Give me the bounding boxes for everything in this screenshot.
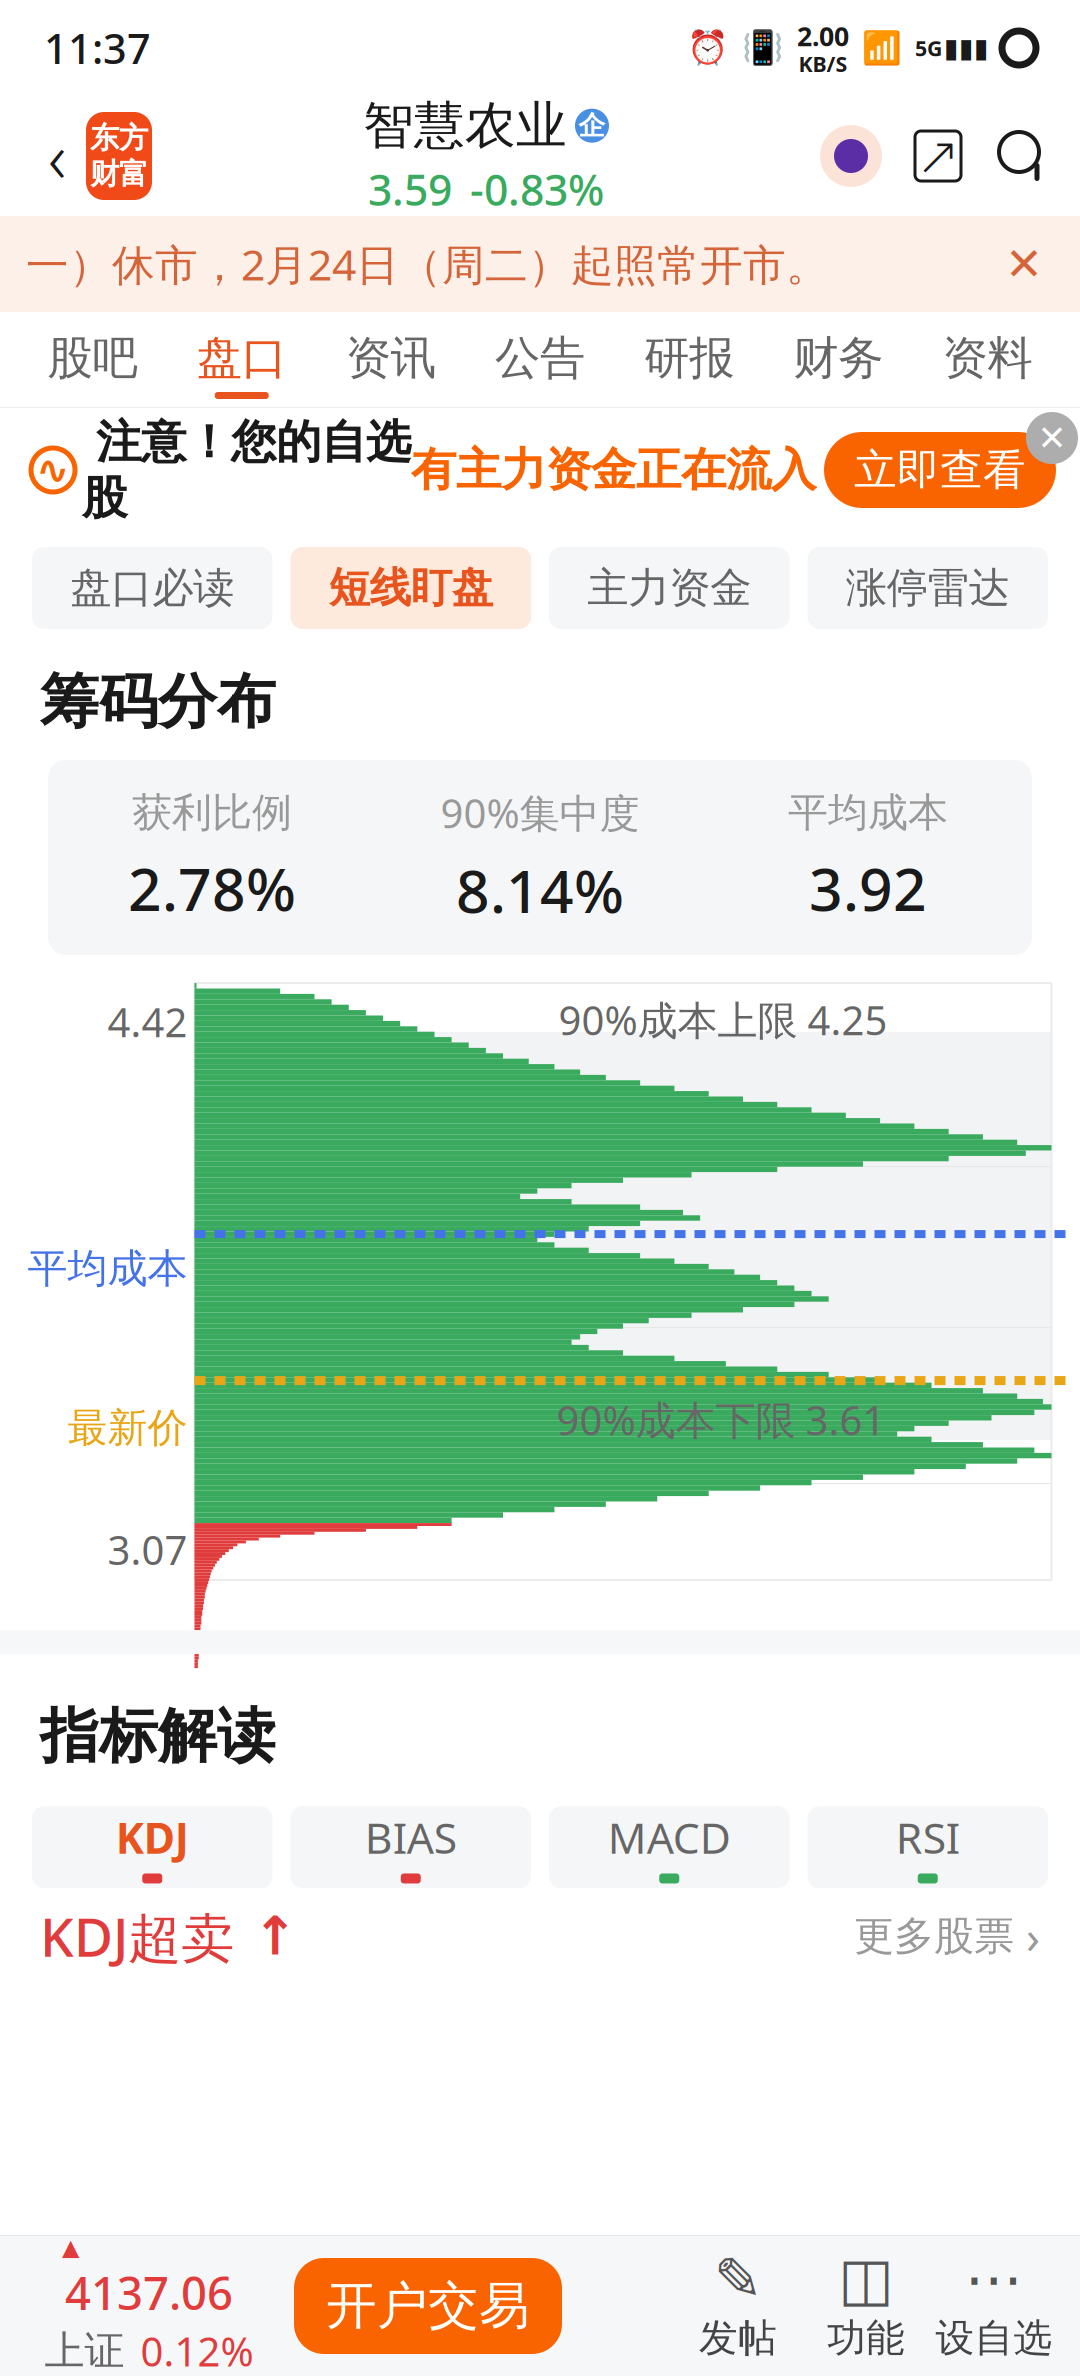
- button[interactable]: 搜索: [994, 127, 1052, 185]
- staticText: 指标解读: [40, 1700, 276, 1772]
- staticText: 3.92: [809, 849, 927, 927]
- staticText: 2.00: [797, 18, 849, 53]
- staticText: 筹码分布: [40, 666, 276, 738]
- staticText: 📶: [862, 30, 902, 66]
- button[interactable]: 返回: [28, 116, 86, 196]
- button[interactable]: 盘口: [167, 312, 316, 407]
- staticText: 发帖: [699, 2314, 777, 2362]
- staticText: ↑: [234, 1906, 298, 1966]
- staticText: 平均成本: [788, 788, 948, 837]
- button[interactable]: KDJ超卖: [0, 1888, 1080, 1984]
- staticText: 📳: [742, 29, 784, 67]
- button[interactable]: 上证指数: [4, 2234, 294, 2376]
- staticText: 4.42: [107, 995, 187, 1048]
- button[interactable]: ∿: [0, 410, 1080, 530]
- staticText: 5G: [915, 34, 942, 62]
- staticText: ⋯: [964, 2246, 1023, 2313]
- button[interactable]: MACD: [549, 1806, 789, 1888]
- button[interactable]: 盘口必读: [32, 547, 272, 629]
- staticText: 财务: [793, 330, 883, 386]
- staticText: 最新价: [67, 1403, 187, 1452]
- button[interactable]: ✎: [674, 2250, 802, 2362]
- staticText: 90%成本上限 4.25: [558, 993, 887, 1046]
- button[interactable]: 关闭广告: [1026, 412, 1078, 464]
- staticText: 3.07: [107, 1523, 187, 1576]
- staticText: KB/S: [798, 49, 847, 78]
- staticText: 盘口: [197, 330, 287, 386]
- staticText: ✕: [1005, 238, 1043, 290]
- staticText: ↗: [915, 126, 960, 186]
- staticText: 资料: [942, 330, 1032, 386]
- staticText: ✎: [713, 2246, 762, 2313]
- staticText: 股吧: [48, 330, 138, 386]
- button[interactable]: 主力资金: [549, 547, 789, 629]
- button[interactable]: 东方财富: [86, 112, 152, 200]
- staticText: ◫: [838, 2246, 893, 2313]
- button[interactable]: 涨停雷达: [807, 547, 1048, 629]
- staticText: 2.78%: [128, 849, 296, 927]
- staticText: ∿: [36, 447, 70, 493]
- staticText: KDJ超卖: [40, 1901, 234, 1972]
- staticText: 盘口必读: [70, 563, 234, 613]
- staticText: 90%集中度: [440, 786, 639, 839]
- staticText: 8.14%: [456, 851, 624, 929]
- button[interactable]: 公告: [465, 312, 614, 407]
- staticText: 获利比例: [132, 788, 292, 837]
- staticText: ▮▮▮: [944, 33, 989, 63]
- staticText: 主力资金: [587, 563, 751, 613]
- staticText: 3.59: [368, 161, 452, 217]
- button[interactable]: 开户交易: [294, 2258, 562, 2354]
- staticText: KDJ: [116, 1809, 189, 1865]
- staticText: ⏰: [687, 29, 729, 67]
- staticText: BIAS: [365, 1809, 457, 1865]
- staticText: 财富: [90, 156, 148, 192]
- staticText: 有主力资金正在流入: [411, 442, 816, 498]
- button[interactable]: RSI: [807, 1806, 1048, 1888]
- staticText: -0.83%: [470, 161, 604, 217]
- staticText: RSI: [896, 1809, 960, 1865]
- staticText: 4137.06: [65, 2262, 233, 2322]
- staticText: 开户交易: [326, 2275, 530, 2337]
- staticText: 短线盯盘: [329, 563, 493, 613]
- button[interactable]: 股吧: [18, 312, 167, 407]
- button[interactable]: 短线盯盘: [290, 547, 531, 629]
- button[interactable]: AI 助手: [820, 125, 882, 187]
- staticText: 90%成本下限 3.61: [556, 1393, 885, 1446]
- button[interactable]: 分享: [912, 128, 964, 184]
- button[interactable]: 研报: [615, 312, 764, 407]
- staticText: 东方: [90, 120, 148, 156]
- button[interactable]: KDJ: [32, 1806, 272, 1888]
- staticText: 更多股票: [854, 1912, 1014, 1961]
- staticText: 涨停雷达: [846, 563, 1010, 613]
- button[interactable]: 关闭公告: [994, 234, 1054, 294]
- staticText: 注意！您的自选股: [82, 414, 411, 526]
- staticText: MACD: [608, 1809, 731, 1865]
- staticText: ▲: [62, 2234, 79, 2260]
- staticText: ‹: [48, 110, 66, 202]
- staticText: 资讯: [346, 330, 436, 386]
- button[interactable]: 资料: [913, 312, 1062, 407]
- button[interactable]: 资讯: [316, 312, 465, 407]
- staticText: 研报: [644, 330, 734, 386]
- staticText: 11:37: [44, 21, 151, 75]
- staticText: 功能: [827, 2314, 905, 2362]
- button[interactable]: ◫: [802, 2250, 930, 2362]
- staticText: 智慧农业: [363, 95, 567, 157]
- staticText: 一）休市，2月24日（周二）起照常开市。: [26, 236, 829, 292]
- staticText: 上证: [44, 2326, 124, 2375]
- button[interactable]: BIAS: [290, 1806, 531, 1888]
- button[interactable]: 财务: [764, 312, 913, 407]
- staticText: ✕: [1037, 418, 1066, 458]
- staticText: ›: [1014, 1906, 1040, 1966]
- staticText: 公告: [495, 330, 585, 386]
- button[interactable]: ⋯: [930, 2250, 1058, 2362]
- staticText: 平均成本: [27, 1244, 187, 1293]
- staticText: 0.12%: [140, 2324, 253, 2376]
- staticText: 企: [578, 109, 605, 142]
- staticText: 立即查看: [854, 444, 1026, 496]
- staticText: 设自选: [935, 2314, 1052, 2362]
